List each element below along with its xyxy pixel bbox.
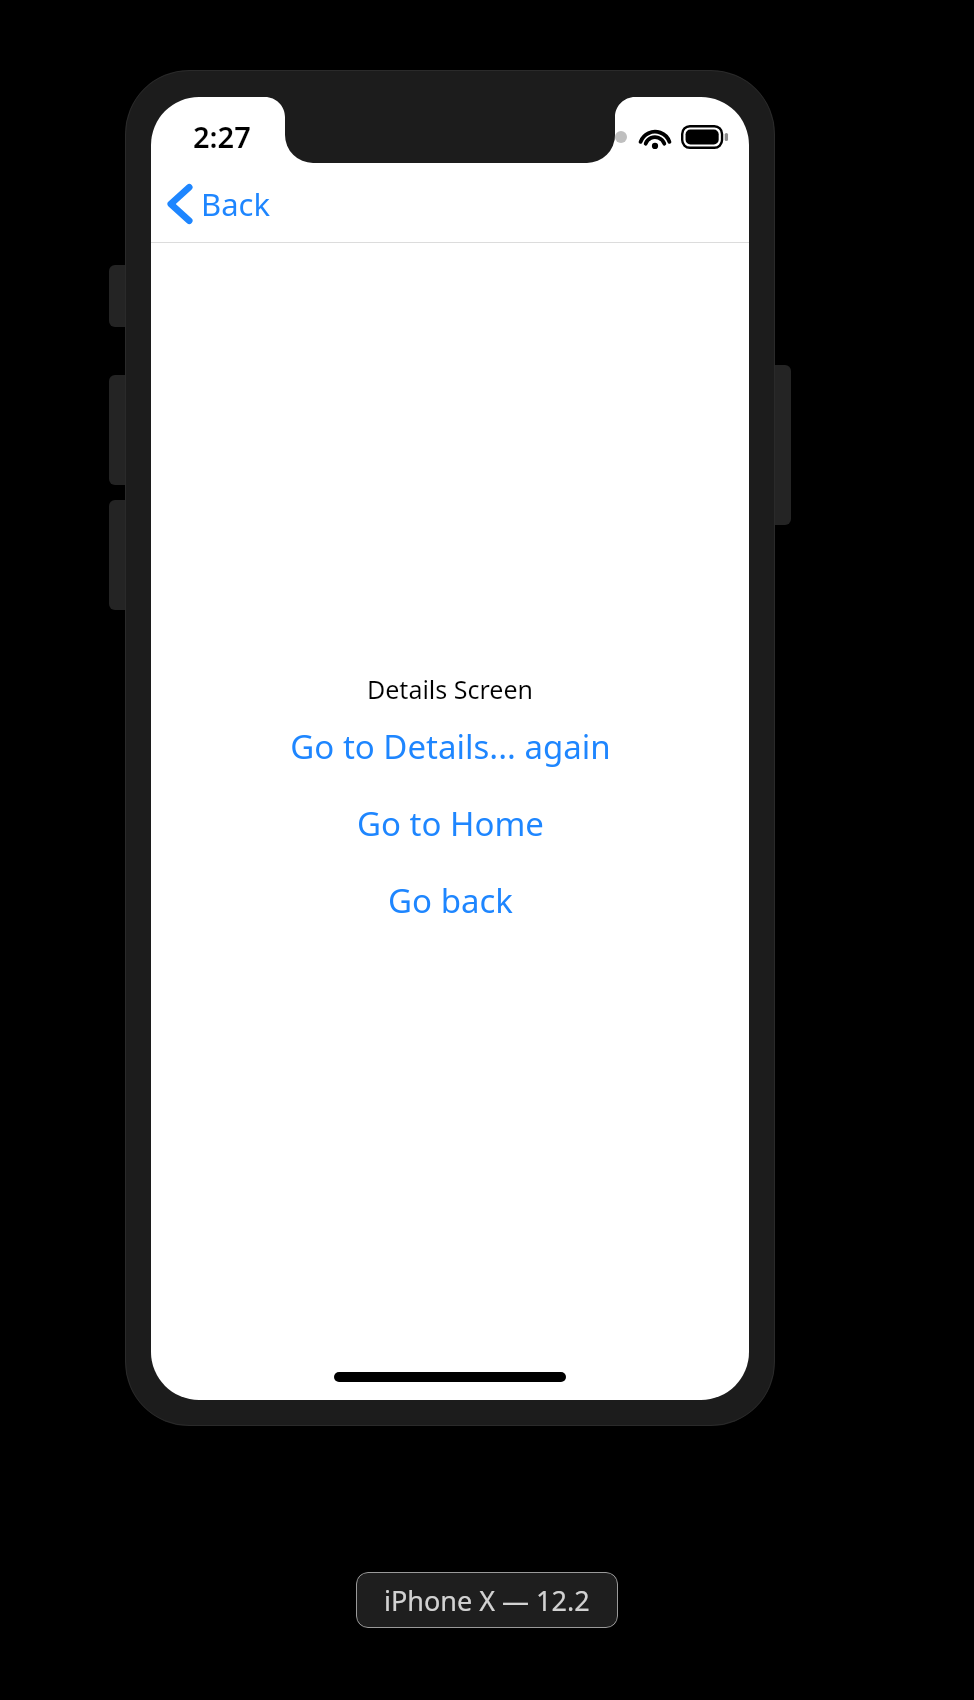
staticText: 2:27 bbox=[193, 117, 251, 156]
button[interactable]: Go back bbox=[374, 874, 527, 927]
staticText: Details Screen bbox=[367, 672, 533, 706]
staticText: iPhone X — 12.2 bbox=[384, 1582, 590, 1619]
button[interactable]: Back bbox=[159, 177, 280, 231]
button[interactable]: Go to Details... again bbox=[276, 720, 625, 773]
staticText: Go back bbox=[388, 878, 513, 923]
button[interactable]: Go to Home bbox=[343, 797, 558, 850]
staticText: Back bbox=[201, 183, 270, 225]
staticText: Go to Details... again bbox=[290, 724, 611, 769]
button[interactable]: iPhone X — 12.2 bbox=[356, 1572, 618, 1628]
staticText: Go to Home bbox=[357, 801, 544, 846]
